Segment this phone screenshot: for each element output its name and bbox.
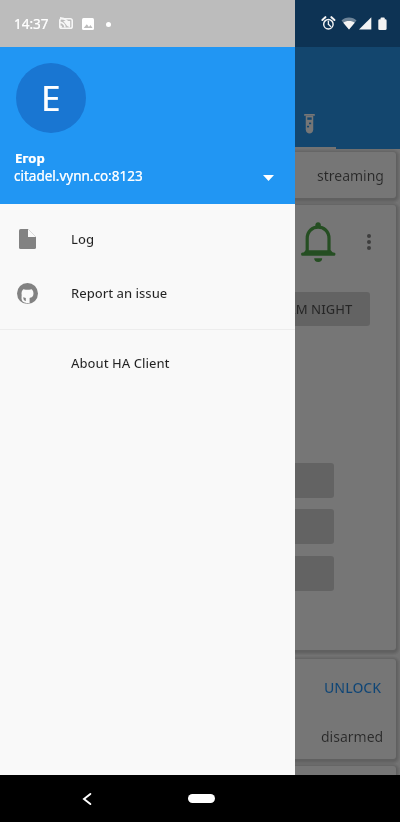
button[interactable]: About HA Client xyxy=(0,336,295,390)
staticText: Report an issue xyxy=(71,284,168,302)
button[interactable] xyxy=(236,463,334,498)
button[interactable] xyxy=(236,509,334,544)
button[interactable]: Report an issue xyxy=(0,266,295,320)
other: Cast xyxy=(59,18,73,29)
staticText: streaming xyxy=(317,166,384,185)
staticText: Log xyxy=(71,230,94,248)
staticText: About HA Client xyxy=(71,354,170,372)
button[interactable]: Log xyxy=(0,212,295,266)
button[interactable]: Home xyxy=(188,794,215,803)
staticText: disarmed xyxy=(321,727,384,746)
button[interactable] xyxy=(236,556,334,591)
button[interactable]: Back xyxy=(70,775,104,822)
staticText: ARM NIGHT xyxy=(279,300,353,318)
button[interactable]: More options xyxy=(365,231,373,253)
staticText: citadel.vynn.co:8123 xyxy=(14,167,143,185)
button[interactable]: ARM NIGHT xyxy=(261,292,370,326)
staticText: E xyxy=(41,74,61,122)
button[interactable]: streaming xyxy=(236,152,396,198)
staticText: Егор xyxy=(15,149,45,167)
staticText: 14:37 xyxy=(14,15,49,33)
button[interactable]: Switch server xyxy=(252,162,284,194)
button[interactable]: UNLOCK xyxy=(324,678,382,697)
